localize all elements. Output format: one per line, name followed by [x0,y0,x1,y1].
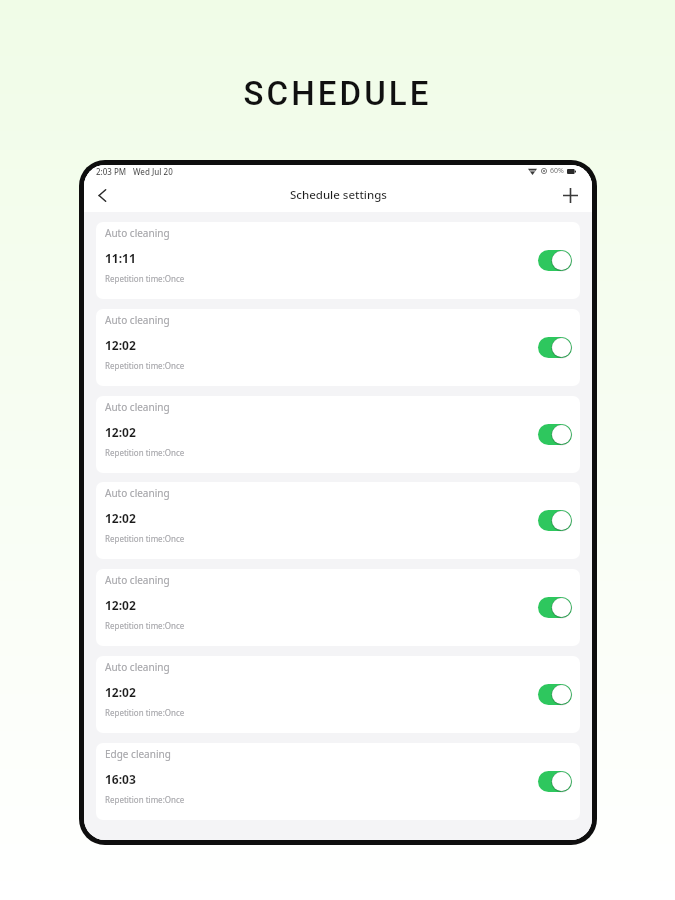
staticText: 60% [550,166,564,176]
button[interactable]: Edge cleaning [96,743,580,820]
staticText: Auto cleaning [105,226,170,240]
staticText: Wed Jul 20 [133,166,173,177]
button[interactable]: Back [91,184,113,206]
button[interactable]: Toggle schedule [538,771,572,792]
button[interactable]: Toggle schedule [538,250,572,271]
staticText: Repetition time:Once [105,707,185,718]
staticText: Repetition time:Once [105,273,185,284]
button[interactable]: Auto cleaning [96,396,580,473]
button[interactable]: Auto cleaning [96,656,580,733]
button[interactable]: Auto cleaning [96,482,580,559]
staticText: Repetition time:Once [105,794,185,805]
staticText: Auto cleaning [105,486,170,500]
staticText: 12:02 [105,510,136,526]
staticText: Auto cleaning [105,573,170,587]
button[interactable]: Toggle schedule [538,337,572,358]
button[interactable]: Auto cleaning [96,309,580,386]
staticText: Auto cleaning [105,400,170,414]
staticText: Repetition time:Once [105,620,185,631]
staticText: 12:02 [105,424,136,440]
staticText: 16:03 [105,771,136,787]
staticText: Repetition time:Once [105,533,185,544]
button[interactable]: Toggle schedule [538,424,572,445]
staticText: Repetition time:Once [105,447,185,458]
button[interactable]: Add schedule [559,184,581,206]
button[interactable]: Toggle schedule [538,510,572,531]
button[interactable]: Toggle schedule [538,597,572,618]
staticText: Edge cleaning [105,747,171,761]
staticText: Auto cleaning [105,660,170,674]
button[interactable]: Auto cleaning [96,569,580,646]
staticText: 12:02 [105,337,136,353]
staticText: 12:02 [105,684,136,700]
button[interactable]: Auto cleaning [96,222,580,299]
button[interactable]: Toggle schedule [538,684,572,705]
staticText: 2:03 PM [96,166,127,177]
staticText: 11:11 [105,250,136,266]
staticText: SCHEDULE [0,74,675,113]
staticText: Auto cleaning [105,313,170,327]
staticText: Schedule settings [290,187,387,203]
staticText: Repetition time:Once [105,360,185,371]
staticText: 12:02 [105,597,136,613]
